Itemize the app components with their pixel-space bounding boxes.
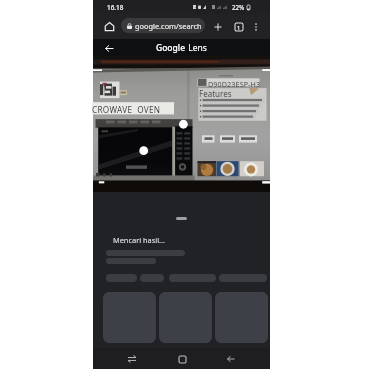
button[interactable]: Back: [101, 40, 117, 56]
staticText: 22%: [232, 3, 245, 11]
button[interactable]: Home: [172, 349, 192, 369]
staticText: 1: [237, 24, 241, 31]
button[interactable]: Back: [221, 349, 241, 369]
button[interactable]: [103, 292, 156, 343]
button[interactable]: google.com/search: [121, 18, 205, 33]
button[interactable]: [159, 292, 212, 343]
staticText: Lens: [186, 42, 207, 54]
staticText: CROWAVE OVEN: [92, 104, 161, 115]
button[interactable]: More options: [249, 20, 263, 34]
staticText: 16.18: [107, 3, 124, 12]
button[interactable]: Recent apps: [122, 349, 142, 369]
button[interactable]: Tabs: [232, 20, 246, 34]
button[interactable]: [215, 292, 268, 343]
staticText: Features: [199, 88, 232, 99]
staticText: Mencari hasil...: [113, 235, 166, 245]
staticText: D90D23ESP-H3: [208, 79, 261, 89]
button[interactable]: Home: [102, 19, 117, 34]
staticText: Google: [156, 42, 186, 54]
staticText: google.com/search: [135, 21, 202, 31]
button[interactable]: New tab: [211, 20, 225, 34]
